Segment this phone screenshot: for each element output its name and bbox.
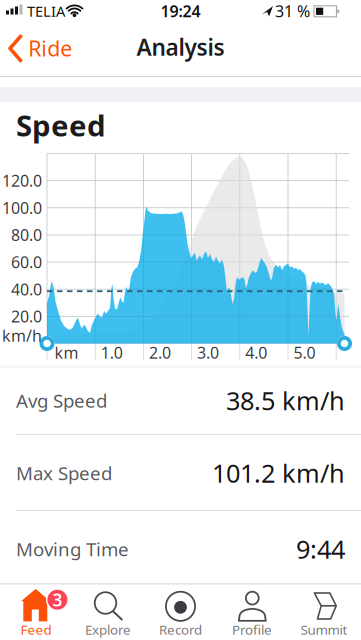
staticText: 5.0	[293, 342, 315, 363]
button[interactable]: Record	[144, 584, 216, 640]
staticText: 31 %	[275, 0, 310, 22]
staticText: km	[54, 342, 78, 363]
staticText: 2.0	[149, 342, 171, 363]
staticText: TELIA	[27, 1, 65, 21]
staticText: Profile	[232, 621, 272, 638]
staticText: 100.0	[2, 197, 42, 218]
staticText: 4.0	[245, 342, 267, 363]
staticText: km/h	[2, 325, 42, 346]
staticText: 9:44	[296, 532, 345, 566]
staticText: Speed	[16, 105, 106, 144]
staticText: Analysis	[136, 32, 224, 62]
staticText: 120.0	[2, 170, 42, 191]
button[interactable]: 3	[0, 584, 72, 640]
staticText: 60.0	[11, 251, 42, 273]
staticText: Feed	[20, 621, 51, 638]
staticText: 1.0	[101, 342, 123, 363]
staticText: Ride	[28, 34, 72, 62]
staticText: 19:24	[160, 0, 200, 22]
button[interactable]: Profile	[216, 584, 288, 640]
staticText: Summit	[300, 621, 347, 638]
staticText: Moving Time	[16, 537, 129, 561]
staticText: 80.0	[11, 224, 42, 245]
staticText: 3	[52, 588, 62, 611]
button[interactable]: Ride	[4, 26, 99, 68]
staticText: 3.0	[197, 342, 219, 363]
staticText: 101.2 km/h	[212, 456, 345, 490]
staticText: 40.0	[11, 279, 42, 300]
staticText: 38.5 km/h	[226, 384, 345, 417]
staticText: Max Speed	[16, 461, 112, 485]
staticText: Explore	[85, 621, 131, 638]
staticText: Avg Speed	[16, 388, 107, 413]
button[interactable]: Explore	[72, 584, 144, 640]
staticText: 20.0	[11, 306, 42, 327]
staticText: Record	[159, 621, 202, 638]
button[interactable]: Summit	[288, 584, 360, 640]
